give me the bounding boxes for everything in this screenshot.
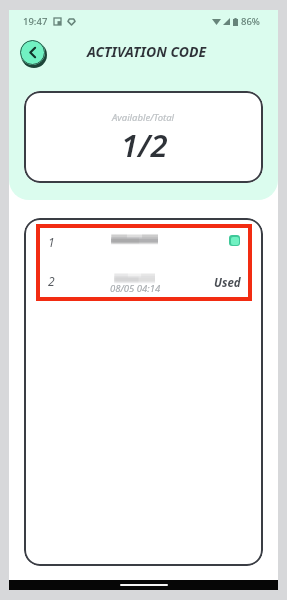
button[interactable]: 2 [36, 270, 252, 304]
button[interactable]: Copy activation code [229, 235, 240, 246]
staticText: 08/05 04:14 [110, 282, 161, 295]
button[interactable]: Available/Total [24, 91, 263, 183]
staticText: Used [214, 275, 241, 291]
button[interactable]: Back [20, 40, 45, 65]
button[interactable]: 1 [36, 231, 252, 264]
staticText: 1 [48, 234, 55, 250]
staticText: 19:47 [23, 15, 48, 28]
staticText: 86% [241, 15, 260, 28]
staticText: 2 [48, 273, 55, 289]
button[interactable]: Home [9, 580, 278, 590]
staticText: 1/2 [121, 124, 168, 166]
staticText: ACTIVATION CODE [87, 42, 207, 61]
staticText: Available/Total [112, 111, 174, 124]
